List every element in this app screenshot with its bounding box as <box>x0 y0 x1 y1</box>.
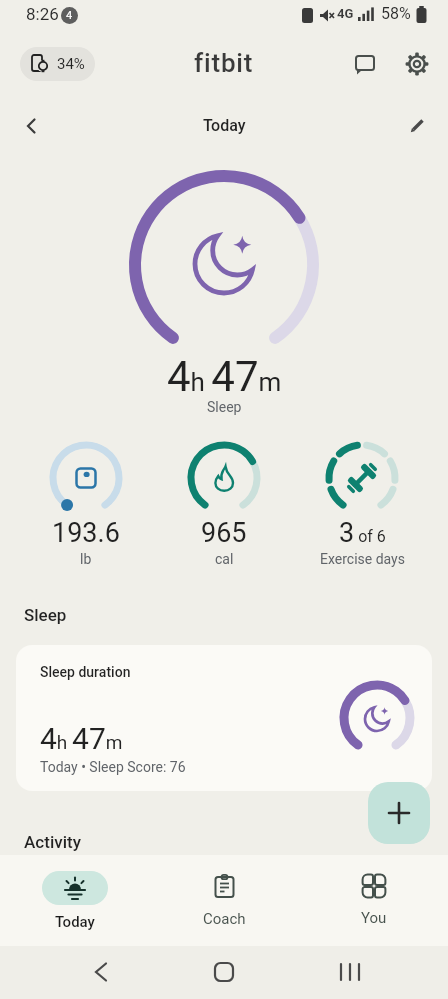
staticText: Activity <box>24 832 81 852</box>
staticText: 4G <box>337 6 354 21</box>
staticText: 58% <box>381 4 411 23</box>
button[interactable] <box>399 46 435 82</box>
staticText: 193.6 <box>52 517 120 549</box>
staticText: You <box>361 909 387 927</box>
button[interactable] <box>16 110 48 142</box>
staticText: 4h 47m <box>40 721 123 756</box>
button[interactable]: 34% <box>20 47 95 81</box>
button[interactable]: Sleep duration <box>16 645 432 791</box>
staticText: Sleep <box>24 605 67 625</box>
staticText: fitbit <box>194 48 254 78</box>
staticText: Sleep <box>207 399 242 415</box>
staticText: Sleep duration <box>40 664 131 680</box>
staticText: 8:26 <box>26 4 59 24</box>
staticText: 3 of 6 <box>339 517 386 549</box>
staticText: Today <box>55 913 95 931</box>
button[interactable]: Coach <box>150 855 299 946</box>
button[interactable] <box>347 46 383 82</box>
staticText: cal <box>215 551 234 567</box>
button[interactable] <box>368 782 430 844</box>
button[interactable] <box>401 110 433 142</box>
button[interactable]: Today <box>0 855 150 946</box>
staticText: lb <box>80 551 92 567</box>
staticText: Today • Sleep Score: 76 <box>40 759 186 775</box>
staticText: 4 <box>66 9 73 22</box>
staticText: Today <box>203 116 246 135</box>
staticText: Coach <box>203 910 246 928</box>
staticText: 4h 47m <box>167 352 282 401</box>
button[interactable]: You <box>299 855 448 946</box>
staticText: Exercise days <box>320 551 405 567</box>
staticText: 965 <box>201 517 247 549</box>
staticText: 34% <box>57 55 85 73</box>
